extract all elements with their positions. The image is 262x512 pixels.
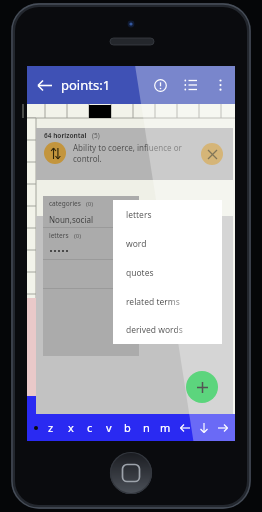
- button[interactable]: x: [61, 414, 80, 441]
- button[interactable]: Info: [145, 70, 175, 100]
- staticText: (0): [74, 232, 82, 240]
- button[interactable]: m: [156, 414, 175, 441]
- staticText: categories: [49, 199, 81, 208]
- button[interactable]: Enter: [194, 414, 213, 441]
- staticText: derived words: [126, 324, 183, 336]
- button[interactable]: Add: [186, 371, 218, 403]
- staticText: quotes: [126, 267, 154, 279]
- staticText: c: [87, 420, 93, 435]
- staticText: (0): [86, 200, 94, 208]
- button[interactable]: n: [137, 414, 156, 441]
- button[interactable]: Close: [201, 143, 223, 165]
- button[interactable]: c: [80, 414, 99, 441]
- button[interactable]: Dot key: [30, 422, 41, 433]
- staticText: n: [143, 420, 150, 435]
- staticText: related terms: [126, 296, 180, 308]
- button[interactable]: z: [41, 414, 61, 441]
- button[interactable]: b: [118, 414, 137, 441]
- staticText: Noun,social: [49, 214, 94, 225]
- button[interactable]: Forward: [213, 414, 232, 441]
- button[interactable]: Backspace: [175, 414, 194, 441]
- button[interactable]: Reorder: [44, 142, 66, 164]
- button[interactable]: derived words: [113, 316, 222, 344]
- staticText: Ability to coerce, influence or control.: [73, 142, 182, 164]
- button[interactable]: Back: [27, 68, 61, 102]
- staticText: z: [48, 420, 54, 435]
- button[interactable]: More options: [205, 70, 235, 100]
- button[interactable]: v: [99, 414, 118, 441]
- staticText: 64 horizontal: [44, 131, 87, 140]
- staticText: x: [68, 420, 74, 435]
- staticText: v: [106, 420, 112, 435]
- staticText: b: [124, 420, 131, 435]
- button[interactable]: 64 horizontal: [36, 128, 233, 180]
- staticText: letters: [126, 209, 152, 221]
- button[interactable]: letters: [113, 200, 222, 229]
- staticText: m: [160, 420, 171, 435]
- staticText: (5): [92, 131, 100, 140]
- staticText: points:1: [61, 76, 111, 94]
- button[interactable]: related terms: [113, 287, 222, 316]
- staticText: letters: [49, 231, 69, 240]
- button[interactable]: quotes: [113, 258, 222, 287]
- staticText: word: [126, 238, 147, 250]
- button[interactable]: List: [175, 70, 205, 100]
- button[interactable]: Home: [110, 452, 152, 494]
- button[interactable]: word: [113, 229, 222, 258]
